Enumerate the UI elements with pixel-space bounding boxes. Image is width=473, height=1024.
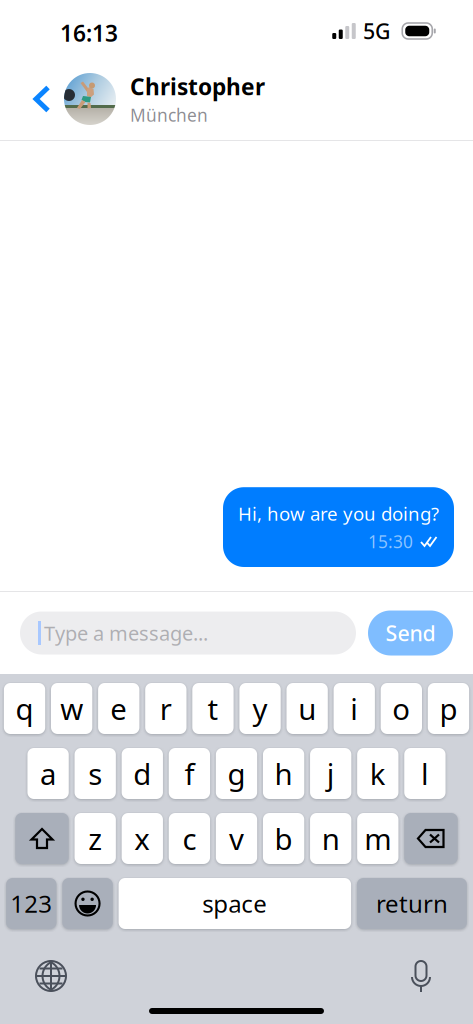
- button[interactable]: i: [334, 683, 375, 734]
- staticText: return: [376, 888, 448, 919]
- staticText: f: [184, 754, 194, 793]
- button[interactable]: n: [310, 813, 351, 864]
- button[interactable]: t: [192, 683, 234, 734]
- staticText: Hi, how are you doing?: [238, 501, 439, 526]
- staticText: z: [88, 819, 102, 858]
- staticText: b: [275, 819, 293, 858]
- staticText: q: [15, 689, 33, 728]
- staticText: v: [229, 819, 244, 858]
- staticText: c: [182, 819, 196, 858]
- staticText: a: [40, 754, 56, 793]
- staticText: y: [252, 689, 267, 728]
- button[interactable]: d: [122, 748, 163, 799]
- staticText: w: [60, 689, 83, 728]
- button[interactable]: Emoji: [62, 878, 113, 929]
- button[interactable]: g: [216, 748, 257, 799]
- staticText: p: [439, 689, 457, 728]
- button[interactable]: h: [263, 748, 304, 799]
- staticText: d: [133, 754, 151, 793]
- button[interactable]: v: [216, 813, 257, 864]
- button[interactable]: Next keyboard: [26, 953, 76, 999]
- staticText: t: [207, 689, 218, 728]
- button[interactable]: 123: [6, 878, 56, 929]
- button[interactable]: u: [286, 683, 328, 734]
- button[interactable]: j: [310, 748, 351, 799]
- button[interactable]: q: [4, 683, 45, 734]
- staticText: u: [298, 689, 316, 728]
- staticText: München: [130, 103, 208, 126]
- staticText: k: [370, 754, 386, 793]
- staticText: 5G: [363, 17, 391, 45]
- staticText: m: [364, 819, 391, 858]
- staticText: n: [322, 819, 340, 858]
- staticText: i: [350, 689, 358, 728]
- button[interactable]: f: [169, 748, 210, 799]
- button[interactable]: r: [145, 683, 186, 734]
- staticText: 123: [10, 888, 52, 919]
- button[interactable]: Back: [22, 69, 62, 129]
- button[interactable]: z: [74, 813, 116, 864]
- staticText: h: [275, 754, 293, 793]
- staticText: o: [392, 689, 410, 728]
- staticText: Send: [385, 619, 435, 647]
- staticText: Christopher: [130, 71, 265, 101]
- staticText: r: [160, 689, 172, 728]
- button[interactable]: a: [27, 748, 69, 799]
- button[interactable]: Shift: [15, 813, 69, 864]
- staticText: space: [202, 888, 267, 919]
- button[interactable]: Delete: [404, 813, 458, 864]
- button[interactable]: e: [98, 683, 139, 734]
- staticText: s: [88, 754, 102, 793]
- staticText: l: [421, 754, 429, 793]
- button[interactable]: x: [122, 813, 163, 864]
- staticText: 15:30: [368, 530, 413, 553]
- button[interactable]: return: [357, 878, 467, 929]
- staticText: 16:13: [60, 18, 118, 48]
- staticText: e: [110, 689, 127, 728]
- button[interactable]: s: [74, 748, 116, 799]
- button[interactable]: Send: [368, 610, 453, 655]
- button[interactable]: k: [357, 748, 398, 799]
- staticText: x: [134, 819, 150, 858]
- staticText: Type a message...: [44, 620, 208, 646]
- button[interactable]: Dictate: [396, 953, 446, 999]
- staticText: g: [227, 754, 245, 793]
- staticText: j: [327, 754, 335, 793]
- button[interactable]: w: [51, 683, 92, 734]
- button[interactable]: b: [263, 813, 304, 864]
- button[interactable]: l: [404, 748, 445, 799]
- button[interactable]: y: [239, 683, 281, 734]
- button[interactable]: o: [381, 683, 422, 734]
- button[interactable]: c: [169, 813, 210, 864]
- button[interactable]: space: [119, 878, 351, 929]
- button[interactable]: m: [357, 813, 398, 864]
- button[interactable]: p: [428, 683, 469, 734]
